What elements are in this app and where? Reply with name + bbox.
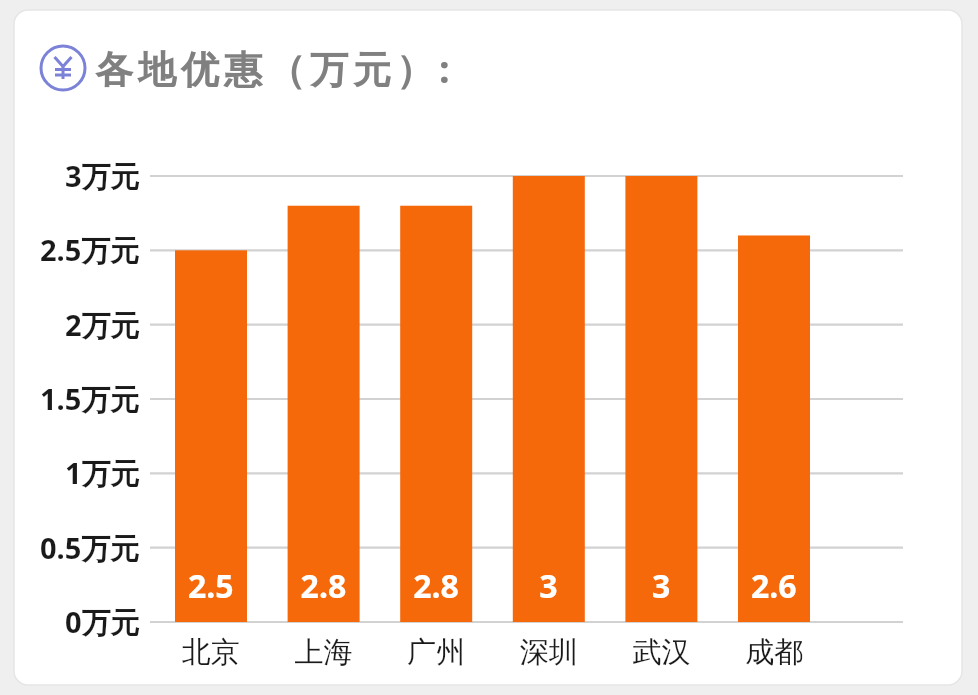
button[interactable]: 各地优惠（万元）柱状图 bbox=[0, 0, 978, 695]
